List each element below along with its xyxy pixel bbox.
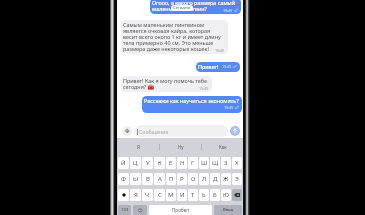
- button[interactable]: Ц: [130, 157, 141, 169]
- button[interactable]: З: [221, 157, 231, 169]
- staticText: Ф: [121, 175, 126, 183]
- staticText: Я: [134, 191, 138, 199]
- staticText: Привет!: [198, 64, 219, 70]
- button[interactable]: Ы: [130, 173, 141, 185]
- button[interactable]: Ю: [221, 189, 231, 201]
- button[interactable]: Attach file: [122, 126, 132, 136]
- staticText: У: [146, 159, 150, 167]
- button[interactable]: Пробел: [149, 205, 212, 215]
- staticText: 😊: [138, 208, 143, 213]
- button[interactable]: Д: [210, 173, 220, 185]
- staticText: 19:45: [215, 48, 225, 53]
- button[interactable]: Emoji: [133, 205, 147, 215]
- button[interactable]: Э: [232, 173, 242, 185]
- staticText: Привет! Как я могу помочь тебе: [123, 78, 207, 84]
- button[interactable]: Shift: [118, 189, 129, 201]
- button[interactable]: К: [154, 157, 165, 169]
- button[interactable]: Самым маленьким пингвином: [121, 20, 228, 54]
- button[interactable]: Сообщение: [134, 125, 228, 137]
- button[interactable]: Привет!: [196, 62, 240, 72]
- button[interactable]: Ж: [221, 173, 231, 185]
- staticText: Ж: [223, 175, 229, 183]
- button[interactable]: М: [166, 189, 176, 201]
- staticText: М: [168, 191, 174, 199]
- button[interactable]: Ш: [199, 157, 209, 169]
- staticText: 19:45: [223, 8, 233, 13]
- button[interactable]: П: [166, 173, 176, 185]
- button[interactable]: Я: [130, 189, 141, 201]
- staticText: размера даже некоторых кошек!: [123, 46, 209, 52]
- staticText: Е: [169, 159, 173, 167]
- staticText: Ш: [201, 159, 208, 167]
- button[interactable]: И: [177, 189, 187, 201]
- button[interactable]: Р: [177, 173, 187, 185]
- staticText: Э: [235, 175, 239, 183]
- button[interactable]: С: [154, 189, 165, 201]
- button[interactable]: Г: [188, 157, 198, 169]
- staticText: П: [169, 175, 174, 183]
- staticText: В: [146, 175, 150, 183]
- staticText: 19:45: [199, 86, 209, 91]
- button[interactable]: А: [154, 173, 165, 185]
- staticText: К: [158, 159, 162, 167]
- staticText: Д: [213, 175, 218, 183]
- staticText: Расскажи как научиться экономить?: [144, 98, 239, 104]
- staticText: И: [180, 191, 185, 199]
- staticText: З: [224, 159, 228, 167]
- button[interactable]: Ь: [199, 189, 209, 201]
- staticText: Б: [213, 191, 217, 199]
- button[interactable]: Ввод: [214, 205, 242, 215]
- staticText: Ну: [178, 144, 184, 150]
- staticText: 19:45: [222, 64, 232, 69]
- button[interactable]: Расскажи как научиться экономить?: [142, 96, 242, 113]
- staticText: Г: [191, 159, 195, 167]
- button[interactable]: Щ: [210, 157, 220, 169]
- staticText: Огооо, а какого размера самый: [152, 0, 236, 6]
- button[interactable]: В: [142, 173, 153, 185]
- staticText: Х: [235, 159, 239, 167]
- staticText: С: [158, 191, 162, 199]
- staticText: тела примерно 40 см. Это меньше: [123, 40, 214, 46]
- button[interactable]: 123: [118, 205, 131, 215]
- button[interactable]: Т: [188, 189, 198, 201]
- button[interactable]: Ч: [142, 189, 153, 201]
- staticText: Самым маленьким пингвином: [123, 22, 205, 28]
- staticText: Й: [121, 159, 126, 167]
- staticText: Ь: [202, 191, 206, 199]
- button[interactable]: Х: [232, 157, 242, 169]
- staticText: Ч: [145, 191, 150, 199]
- staticText: Р: [180, 175, 184, 183]
- staticText: является очковая кайра, которая: [123, 28, 211, 34]
- button[interactable]: О: [188, 173, 198, 185]
- staticText: Сегодня: [173, 5, 191, 11]
- button[interactable]: Я: [117, 138, 159, 155]
- staticText: О: [191, 175, 196, 183]
- button[interactable]: Ну: [160, 138, 201, 155]
- staticText: Я: [137, 144, 140, 150]
- button[interactable]: Е: [166, 157, 176, 169]
- button[interactable]: Send message: [230, 126, 240, 136]
- staticText: Ы: [133, 175, 139, 183]
- staticText: весит всего около 1 кг и имеет длину: [123, 34, 221, 40]
- button[interactable]: Привет! Как я могу помочь тебе: [121, 76, 212, 92]
- button[interactable]: У: [142, 157, 153, 169]
- staticText: сегодня? 🧰: [123, 84, 155, 90]
- button[interactable]: Огооо, а какого размера самый: [150, 0, 241, 14]
- button[interactable]: Как: [202, 138, 243, 155]
- staticText: Н: [180, 159, 185, 167]
- button[interactable]: Ф: [118, 173, 129, 185]
- button[interactable]: Сегодня: [171, 5, 193, 11]
- button[interactable]: Backspace: [232, 189, 242, 201]
- staticText: Ввод: [223, 207, 234, 213]
- staticText: Ц: [133, 159, 138, 167]
- staticText: А: [158, 175, 162, 183]
- button[interactable]: Н: [177, 157, 187, 169]
- staticText: Л: [202, 175, 207, 183]
- staticText: маленький пингвин?: [152, 6, 207, 12]
- staticText: 19:45: [224, 105, 234, 110]
- button[interactable]: Л: [199, 173, 209, 185]
- button[interactable]: Б: [210, 189, 220, 201]
- staticText: Как: [219, 144, 227, 150]
- button[interactable]: Й: [118, 157, 129, 169]
- staticText: Т: [191, 191, 195, 199]
